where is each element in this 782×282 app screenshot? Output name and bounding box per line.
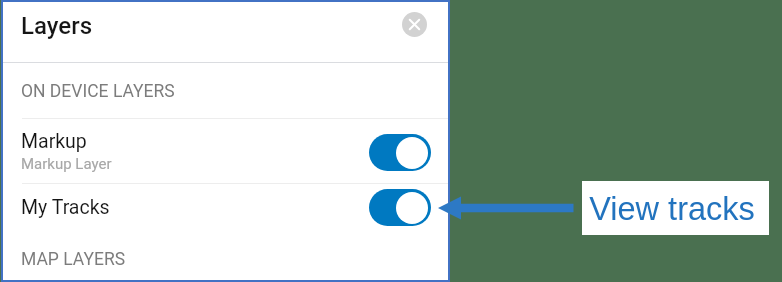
button[interactable]: Toggle layer [369, 189, 431, 226]
staticText: My Tracks [21, 196, 110, 219]
button[interactable]: Close [402, 12, 427, 37]
button[interactable]: Toggle layer [369, 134, 431, 171]
staticText: ON DEVICE LAYERS [21, 81, 175, 102]
button[interactable]: My Tracks [3, 184, 448, 236]
staticText: View tracks [589, 191, 755, 227]
staticText: Markup Layer [21, 155, 112, 173]
button[interactable]: Markup [3, 119, 448, 183]
button[interactable]: View tracks [582, 181, 769, 235]
staticText: Layers [21, 12, 93, 40]
staticText: MAP LAYERS [21, 249, 126, 270]
staticText: Markup [21, 130, 87, 153]
